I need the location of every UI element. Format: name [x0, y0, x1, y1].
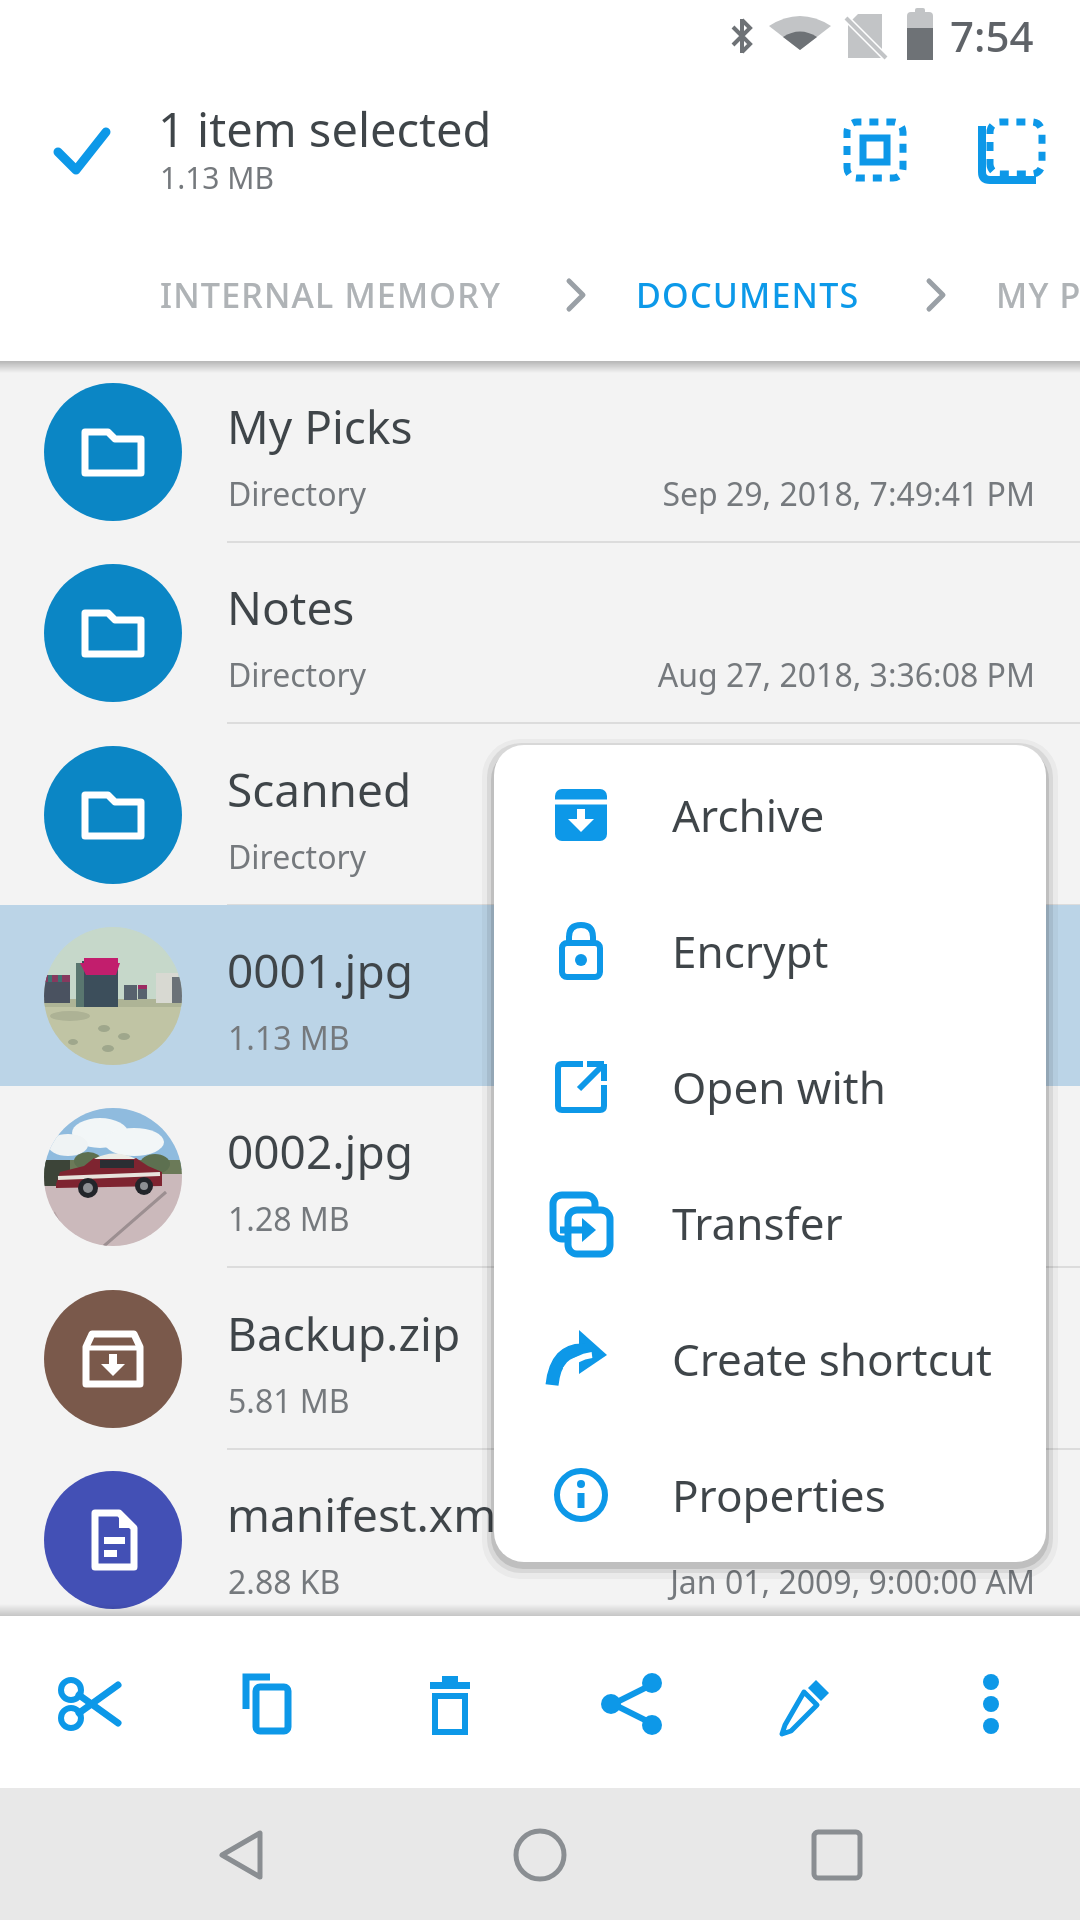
staticText: Archive [672, 785, 825, 845]
button[interactable] [978, 118, 1042, 182]
staticText: Encrypt [672, 921, 829, 981]
staticText: Directory [228, 472, 367, 516]
staticText: 5.81 MB [228, 1379, 350, 1423]
staticText: Properties [672, 1465, 886, 1525]
button[interactable]: Notes [0, 542, 1080, 723]
staticText: 1.28 MB [228, 1197, 350, 1241]
staticText: Directory [228, 653, 367, 697]
button[interactable] [211, 1649, 321, 1759]
button[interactable] [575, 1649, 685, 1759]
staticText: manifest.xml [227, 1483, 509, 1546]
button[interactable] [395, 1649, 505, 1759]
button[interactable]: Backup.zip [0, 1268, 1080, 1449]
staticText: Directory [228, 835, 367, 879]
staticText: 0002.jpg [227, 1120, 414, 1183]
button[interactable] [936, 1649, 1046, 1759]
staticText: Sep 29, 2018, 7:49:41 PM [662, 472, 1035, 516]
button[interactable]: manifest.xml [0, 1449, 1080, 1630]
button[interactable]: Open with [494, 1027, 1046, 1147]
staticText: 0001.jpg [227, 939, 414, 1002]
button[interactable]: INTERNAL MEMORY [160, 268, 1060, 322]
staticText: DOCUMENTS [636, 272, 860, 318]
button[interactable]: My Picks [0, 361, 1080, 542]
staticText: Transfer [672, 1193, 843, 1253]
staticText: 1.13 MB [228, 1016, 350, 1060]
staticText: Open with [672, 1057, 886, 1117]
staticText: 1 item selected [158, 97, 492, 161]
button[interactable]: Transfer [494, 1163, 1046, 1283]
staticText: Jan 01, 2009, 9:00:00 AM [670, 1560, 1035, 1604]
button[interactable] [184, 1795, 304, 1915]
staticText: 2.88 KB [228, 1560, 341, 1604]
button[interactable]: Scanned [0, 724, 1080, 905]
button[interactable]: 0002.jpg [0, 1086, 1080, 1267]
button[interactable]: 0001.jpg [0, 905, 1080, 1086]
button[interactable] [753, 1649, 863, 1759]
button[interactable] [44, 112, 120, 188]
button[interactable]: Archive [494, 755, 1046, 875]
staticText: Create shortcut [672, 1329, 992, 1389]
button[interactable] [35, 1649, 145, 1759]
staticText: Backup.zip [227, 1302, 461, 1365]
staticText: MY P [996, 272, 1080, 318]
staticText: 7:54 [950, 7, 1034, 64]
button[interactable]: Properties [494, 1435, 1046, 1555]
staticText: INTERNAL MEMORY [160, 272, 501, 318]
button[interactable]: Create shortcut [494, 1299, 1046, 1419]
button[interactable]: Encrypt [494, 891, 1046, 1011]
button[interactable] [777, 1795, 897, 1915]
button[interactable]: DOCUMENTS [636, 268, 1080, 322]
staticText: Notes [227, 576, 355, 639]
staticText: 1.13 MB [160, 157, 275, 198]
button[interactable] [843, 118, 907, 182]
staticText: Aug 27, 2018, 3:36:08 PM [657, 653, 1035, 697]
button[interactable] [480, 1795, 600, 1915]
staticText: Scanned [227, 758, 412, 821]
staticText: My Picks [227, 395, 413, 458]
